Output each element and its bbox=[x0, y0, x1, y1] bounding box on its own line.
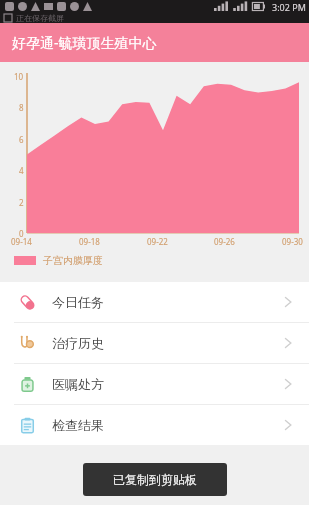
other: Open 今日任务 bbox=[281, 295, 295, 309]
staticText: 正在保存截屏 bbox=[16, 13, 64, 23]
other: Open 医嘱处方 bbox=[281, 377, 295, 391]
staticText: 09-22 bbox=[147, 236, 168, 247]
staticText: 今日任务 bbox=[52, 294, 104, 310]
staticText: 09-30 bbox=[282, 236, 303, 247]
staticText: 治疗历史 bbox=[52, 335, 104, 351]
staticText: 0 bbox=[19, 228, 24, 239]
button[interactable]: 治疗历史 bbox=[0, 323, 309, 363]
staticText: 09-26 bbox=[214, 236, 235, 247]
staticText: 10 bbox=[14, 71, 24, 82]
staticText: 医嘱处方 bbox=[52, 376, 104, 392]
staticText: 2 bbox=[19, 197, 24, 208]
other: Open 治疗历史 bbox=[281, 336, 295, 350]
staticText: 子宫内膜厚度 bbox=[43, 254, 103, 267]
other: Open 检查结果 bbox=[281, 418, 295, 432]
staticText: 已复制到剪贴板 bbox=[113, 472, 197, 487]
staticText: 4 bbox=[19, 165, 24, 176]
staticText: 09-14 bbox=[11, 236, 32, 247]
staticText: 09-18 bbox=[79, 236, 100, 247]
button[interactable]: 今日任务 bbox=[0, 282, 309, 322]
button[interactable]: 检查结果 bbox=[0, 405, 309, 445]
staticText: 3:02 PM bbox=[272, 1, 306, 13]
staticText: 好孕通-毓璜顶生殖中心 bbox=[12, 33, 157, 52]
staticText: 6 bbox=[19, 134, 24, 145]
staticText: 检查结果 bbox=[52, 417, 104, 433]
button[interactable]: 医嘱处方 bbox=[0, 364, 309, 404]
staticText: 8 bbox=[19, 102, 24, 113]
